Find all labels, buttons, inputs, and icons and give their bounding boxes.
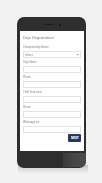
staticText: NEXT xyxy=(71,136,79,140)
staticText: Dojo Registration xyxy=(23,35,54,40)
button[interactable] xyxy=(23,96,81,103)
button[interactable]: NEXT xyxy=(68,134,81,142)
button[interactable] xyxy=(23,126,81,133)
staticText: Phone xyxy=(23,105,31,109)
staticText: Championship Name xyxy=(23,45,49,49)
staticText: Whatsapp no. xyxy=(23,120,40,124)
staticText: Dojo Name xyxy=(23,60,37,64)
staticText: Phone xyxy=(23,75,31,79)
button[interactable] xyxy=(23,66,81,73)
staticText: Chief Instructor xyxy=(23,90,43,94)
staticText: Select xyxy=(25,53,33,57)
button[interactable] xyxy=(23,111,81,118)
button[interactable] xyxy=(23,81,81,88)
button[interactable]: Select xyxy=(23,51,81,58)
other: Open dropdown xyxy=(76,53,79,56)
